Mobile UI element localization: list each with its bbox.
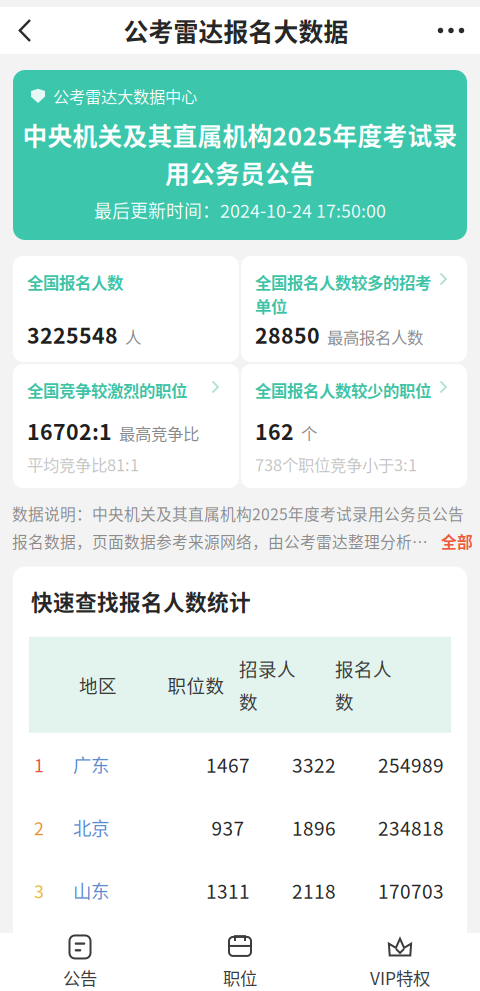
button[interactable]: 全国报名人数较多的招考单位: [241, 256, 467, 362]
staticText: 报名数据，页面数据参考来源网络，由公考雷达整理分析（...: [12, 530, 436, 553]
staticText: 16702:1: [27, 415, 112, 446]
button[interactable]: VIP特权: [320, 933, 480, 991]
staticText: 公告: [63, 965, 97, 990]
staticText: 公考雷达大数据中心: [53, 84, 197, 108]
staticText: 报名人: [335, 655, 392, 682]
staticText: 1311: [206, 876, 250, 904]
staticText: 平均竞争比81:1: [27, 452, 139, 476]
staticText: 全国报名人数: [27, 270, 123, 294]
button[interactable]: 3: [13, 859, 467, 922]
staticText: 快速查找报名人数统计: [31, 586, 251, 617]
staticText: 招录人: [239, 655, 296, 682]
staticText: 中央机关及其直属机构2025年度考试录: [22, 117, 457, 153]
staticText: 人: [125, 325, 141, 348]
button[interactable]: 全部: [436, 530, 473, 553]
staticText: 最后更新时间：2024-10-24 17:50:00: [94, 197, 386, 223]
staticText: 3: [34, 877, 44, 903]
staticText: 2: [34, 814, 44, 840]
staticText: VIP特权: [370, 965, 430, 990]
staticText: 全国报名人数较少的职位: [255, 378, 431, 402]
button[interactable]: 全国竞争较激烈的职位: [13, 364, 239, 488]
staticText: 1896: [292, 813, 336, 841]
button[interactable]: 4: [13, 922, 467, 985]
staticText: 山东: [73, 877, 109, 904]
staticText: 170703: [378, 876, 444, 904]
staticText: 全国报名人数较多的招考单位: [255, 270, 431, 317]
staticText: 个: [301, 421, 317, 445]
staticText: 937: [211, 813, 244, 841]
staticText: 234818: [378, 813, 444, 841]
button[interactable]: 更多: [422, 7, 480, 54]
staticText: 162: [255, 415, 294, 446]
button[interactable]: 全国报名人数: [13, 256, 239, 362]
button[interactable]: 2: [13, 796, 467, 859]
staticText: 全部: [441, 530, 473, 553]
staticText: 全国竞争较激烈的职位: [27, 378, 187, 402]
staticText: 3322: [292, 750, 336, 778]
staticText: 1467: [206, 750, 250, 778]
staticText: 975: [211, 939, 244, 967]
staticText: 254989: [378, 750, 444, 778]
staticText: 146324: [378, 939, 444, 967]
staticText: 地区: [79, 671, 117, 698]
staticText: 数: [335, 688, 354, 715]
staticText: 用公务员公告: [165, 155, 315, 190]
staticText: 数据说明：中央机关及其直属机构2025年度考试录用公务员公告: [12, 502, 464, 525]
staticText: 最高报名人数: [327, 325, 423, 348]
button[interactable]: 公告: [0, 933, 160, 991]
staticText: 最高竞争比: [119, 421, 199, 445]
staticText: 2118: [292, 876, 336, 904]
staticText: 河南: [73, 940, 109, 967]
staticText: 广东: [73, 751, 109, 778]
staticText: 1: [34, 751, 44, 777]
staticText: 3225548: [27, 319, 118, 350]
staticText: 公考雷达报名大数据: [123, 12, 348, 48]
button[interactable]: 职位: [160, 933, 320, 991]
button[interactable]: 返回: [0, 7, 50, 54]
button[interactable]: 1: [13, 733, 467, 796]
staticText: 数: [239, 688, 258, 715]
staticText: 职位: [223, 965, 257, 990]
button[interactable]: 全国报名人数较少的职位: [241, 364, 467, 488]
staticText: 738个职位竞争小于3:1: [255, 452, 417, 476]
staticText: 职位数: [167, 671, 224, 698]
staticText: 北京: [73, 814, 109, 841]
staticText: 28850: [255, 319, 320, 350]
